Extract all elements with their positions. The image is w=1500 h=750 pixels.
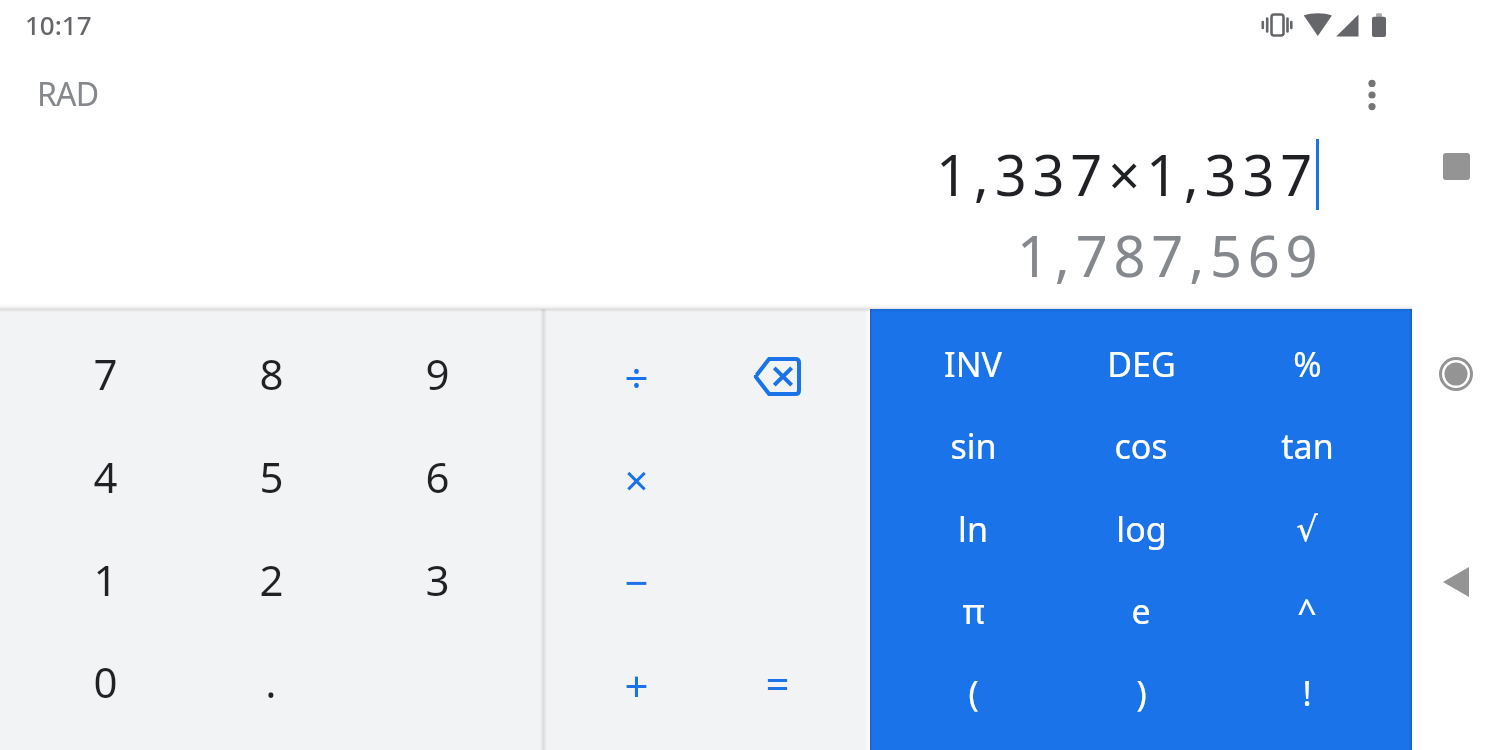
staticText: INV — [944, 341, 1002, 387]
staticText: ln — [958, 506, 988, 552]
button[interactable]: 5 — [188, 425, 354, 527]
staticText: 6 — [425, 448, 450, 505]
button[interactable]: ÷ — [556, 325, 716, 427]
staticText: 1 — [93, 551, 118, 608]
button[interactable]: √ — [1224, 488, 1390, 570]
button[interactable]: log — [1058, 488, 1224, 570]
button[interactable]: ( — [890, 652, 1056, 734]
button[interactable]: − — [556, 530, 716, 632]
staticText: 4 — [93, 448, 118, 505]
staticText: . — [265, 653, 277, 710]
staticText: × — [624, 451, 649, 508]
button[interactable]: 1 — [22, 528, 188, 630]
staticText: ^ — [1297, 588, 1317, 634]
button[interactable]: ^ — [1224, 570, 1390, 652]
button[interactable]: 6 — [354, 425, 520, 527]
staticText: sin — [950, 423, 997, 469]
staticText: tan — [1281, 423, 1334, 469]
button[interactable]: sin — [890, 405, 1056, 487]
staticText: √ — [1296, 509, 1318, 549]
button[interactable]: 9 — [354, 322, 520, 424]
staticText: 3 — [425, 551, 450, 608]
staticText: + — [624, 657, 649, 714]
staticText: ( — [968, 670, 979, 716]
staticText: 0 — [93, 653, 118, 710]
staticText: 1,337×1,337 — [936, 136, 1319, 212]
button[interactable]: Back — [1432, 558, 1480, 606]
button[interactable]: Recents — [1432, 142, 1480, 190]
staticText: log — [1116, 506, 1167, 552]
staticText: cos — [1114, 423, 1168, 469]
button[interactable]: × — [556, 428, 716, 530]
staticText: e — [1131, 588, 1151, 634]
staticText: ! — [1302, 670, 1312, 716]
button[interactable]: More options — [1348, 71, 1396, 119]
button[interactable]: 3 — [354, 528, 520, 630]
button[interactable]: 8 — [188, 322, 354, 424]
button[interactable]: = — [697, 631, 857, 733]
button[interactable]: ) — [1058, 652, 1224, 734]
staticText: ÷ — [624, 348, 649, 405]
button[interactable]: cos — [1058, 405, 1224, 487]
button[interactable]: Backspace — [749, 348, 805, 404]
button[interactable]: 7 — [22, 322, 188, 424]
staticText: 10:17 — [25, 7, 92, 42]
button[interactable]: RAD — [37, 72, 99, 116]
button[interactable]: . — [188, 630, 354, 732]
button[interactable]: π — [890, 570, 1056, 652]
staticText: 2 — [259, 551, 284, 608]
button[interactable]: 2 — [188, 528, 354, 630]
staticText: DEG — [1107, 341, 1176, 387]
staticText: 8 — [259, 345, 284, 402]
button[interactable]: 4 — [22, 425, 188, 527]
staticText: 9 — [425, 345, 450, 402]
button[interactable]: tan — [1224, 405, 1390, 487]
staticText: % — [1293, 341, 1322, 387]
button[interactable]: DEG — [1058, 323, 1224, 405]
staticText: π — [962, 588, 985, 634]
staticText: 5 — [259, 448, 284, 505]
button[interactable]: ln — [890, 488, 1056, 570]
staticText: − — [624, 553, 649, 610]
button[interactable]: 0 — [22, 630, 188, 732]
button[interactable]: + — [556, 634, 716, 736]
button[interactable]: e — [1058, 570, 1224, 652]
staticText: 1,787,569 — [1017, 217, 1324, 293]
button[interactable]: ! — [1224, 652, 1390, 734]
staticText: 7 — [93, 345, 118, 402]
staticText: ) — [1136, 670, 1147, 716]
button[interactable]: % — [1224, 323, 1390, 405]
staticText: RAD — [37, 72, 99, 116]
button[interactable]: INV — [890, 323, 1056, 405]
button[interactable]: Home — [1432, 350, 1480, 398]
staticText: = — [765, 654, 790, 711]
